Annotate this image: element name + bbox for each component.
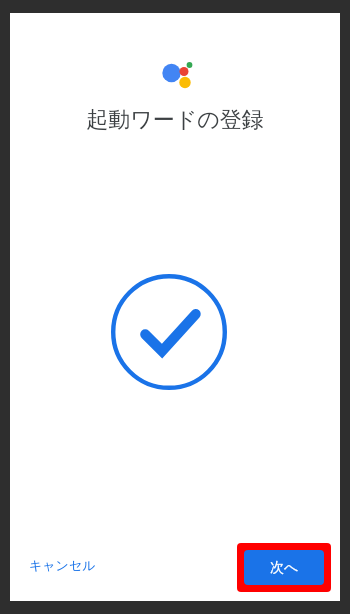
staticText: 起動ワードの登録 bbox=[10, 106, 340, 614]
staticText: キャンセル bbox=[29, 557, 96, 573]
staticText: 次へ bbox=[270, 559, 299, 577]
button[interactable]: キャンセル bbox=[18, 544, 106, 586]
button[interactable]: 次へ bbox=[244, 550, 324, 585]
other: Google Assistant bbox=[160, 58, 200, 88]
